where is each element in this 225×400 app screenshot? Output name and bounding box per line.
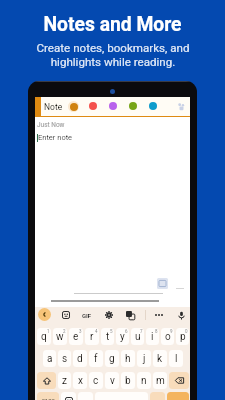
staticText: 4 xyxy=(95,329,98,334)
staticText: j xyxy=(143,353,146,365)
button[interactable]: o xyxy=(161,328,174,345)
button[interactable]: d xyxy=(73,350,87,367)
staticText: p xyxy=(180,331,186,343)
button[interactable]: m xyxy=(153,372,167,389)
button[interactable]: a xyxy=(43,350,56,367)
staticText: ?123 xyxy=(42,397,55,400)
button[interactable]: Stickers xyxy=(59,308,73,322)
button[interactable]: Shift xyxy=(37,372,56,389)
button[interactable]: Translate xyxy=(123,308,137,322)
staticText: z xyxy=(62,375,67,387)
staticText: w xyxy=(56,331,64,343)
staticText: 6 xyxy=(125,329,128,334)
button[interactable]: Emoji xyxy=(61,392,76,400)
button[interactable]: Backspace xyxy=(169,372,189,389)
button[interactable]: Symbols xyxy=(37,392,59,400)
button[interactable]: . xyxy=(150,392,165,400)
staticText: 9 xyxy=(170,329,173,334)
staticText: u xyxy=(135,331,141,343)
button[interactable]: Settings xyxy=(102,308,116,322)
staticText: Enter note xyxy=(38,133,73,142)
staticText: 0 xyxy=(185,329,188,334)
button[interactable]: Colour 4 xyxy=(126,96,140,116)
button[interactable]: f xyxy=(89,350,103,367)
staticText: m xyxy=(156,375,165,387)
button[interactable]: q xyxy=(37,328,51,345)
button[interactable]: n xyxy=(137,372,151,389)
staticText: 8 xyxy=(155,329,158,334)
staticText: o xyxy=(165,331,171,343)
button[interactable]: u xyxy=(131,328,144,345)
button[interactable]: GIF xyxy=(80,308,94,322)
staticText: c xyxy=(93,375,99,387)
button[interactable]: b xyxy=(121,372,135,389)
button[interactable]: i xyxy=(146,328,159,345)
staticText: 2 xyxy=(63,329,66,334)
staticText: f xyxy=(94,353,98,365)
staticText: Notes and More xyxy=(43,13,182,36)
staticText: 3 xyxy=(79,329,82,334)
button[interactable]: Colour 2 xyxy=(86,96,100,116)
button[interactable]: k xyxy=(153,350,167,367)
button[interactable]: t xyxy=(101,328,114,345)
button[interactable]: Note xyxy=(44,97,66,117)
staticText: y xyxy=(120,331,125,343)
staticText: Create notes, bookmarks, and highlights … xyxy=(36,41,190,69)
staticText: b xyxy=(125,375,131,387)
staticText: h xyxy=(125,353,131,365)
button[interactable]: x xyxy=(73,372,87,389)
button[interactable]: l xyxy=(169,350,183,367)
button[interactable]: r xyxy=(85,328,99,345)
button[interactable]: Colour 5 xyxy=(146,96,160,116)
staticText: g xyxy=(109,353,115,365)
staticText: d xyxy=(77,353,83,365)
staticText: k xyxy=(157,353,163,365)
button[interactable]: Colour 1 xyxy=(66,96,80,116)
staticText: Just Now xyxy=(37,121,65,129)
button[interactable]: e xyxy=(69,328,83,345)
button[interactable]: w xyxy=(53,328,67,345)
button[interactable]: y xyxy=(116,328,129,345)
button[interactable]: h xyxy=(121,350,135,367)
button[interactable]: j xyxy=(137,350,151,367)
button[interactable]: g xyxy=(105,350,119,367)
button[interactable]: , xyxy=(78,392,93,400)
staticText: l xyxy=(175,353,178,365)
button[interactable]: More xyxy=(152,308,166,322)
staticText: n xyxy=(141,375,147,387)
button[interactable]: v xyxy=(105,372,119,389)
button[interactable]: Voice input xyxy=(174,308,188,322)
button[interactable]: Enter xyxy=(167,392,189,400)
button[interactable]: Colour 3 xyxy=(106,96,120,116)
staticText: v xyxy=(110,375,115,387)
staticText: a xyxy=(47,353,53,365)
button[interactable]: Expand toolbar xyxy=(38,308,51,321)
staticText: Note xyxy=(44,102,63,112)
staticText: i xyxy=(151,331,154,343)
button[interactable]: s xyxy=(58,350,71,367)
staticText: q xyxy=(41,331,47,343)
staticText: 1 xyxy=(47,329,50,334)
staticText: 7 xyxy=(140,329,143,334)
staticText: GIF xyxy=(82,312,92,319)
staticText: x xyxy=(78,375,83,387)
button[interactable]: p xyxy=(176,328,189,345)
button[interactable]: z xyxy=(58,372,71,389)
staticText: t xyxy=(106,331,110,343)
button[interactable]: c xyxy=(89,372,103,389)
button[interactable]: More options xyxy=(174,99,188,113)
staticText: e xyxy=(73,331,79,343)
staticText: r xyxy=(90,331,94,343)
staticText: s xyxy=(62,353,68,365)
staticText: 5 xyxy=(110,329,113,334)
